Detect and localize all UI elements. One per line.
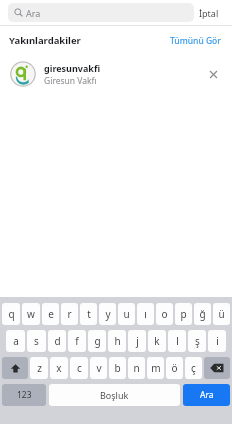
button[interactable]: c bbox=[70, 357, 88, 379]
staticText: v bbox=[96, 361, 102, 375]
button[interactable]: Ara bbox=[8, 3, 194, 22]
staticText: Yakınlardakiler bbox=[9, 34, 81, 47]
button[interactable]: Shift bbox=[2, 357, 28, 379]
staticText: k bbox=[154, 334, 160, 348]
button[interactable]: q bbox=[2, 303, 20, 325]
button[interactable]: j bbox=[128, 330, 146, 352]
button[interactable]: o bbox=[156, 303, 173, 325]
button[interactable]: u bbox=[118, 303, 135, 325]
button[interactable]: m bbox=[147, 357, 164, 379]
staticText: Boşluk bbox=[100, 389, 129, 401]
staticText: j bbox=[136, 334, 139, 348]
staticText: p bbox=[180, 307, 187, 321]
staticText: c bbox=[77, 361, 82, 375]
staticText: n bbox=[133, 361, 140, 375]
staticText: l bbox=[176, 334, 179, 348]
button[interactable]: Boşluk bbox=[49, 384, 180, 406]
button[interactable]: l bbox=[168, 330, 186, 352]
button[interactable]: ş bbox=[188, 330, 206, 352]
staticText: f bbox=[75, 334, 79, 348]
button[interactable]: ö bbox=[166, 357, 183, 379]
button[interactable]: h bbox=[108, 330, 126, 352]
button[interactable]: e bbox=[42, 303, 59, 325]
staticText: y bbox=[105, 307, 111, 321]
staticText: g bbox=[94, 334, 101, 348]
staticText: t bbox=[87, 307, 91, 321]
button[interactable]: a bbox=[6, 330, 25, 352]
staticText: İptal bbox=[199, 7, 219, 19]
button[interactable]: g bbox=[88, 330, 106, 352]
staticText: z bbox=[37, 361, 42, 375]
staticText: 123 bbox=[17, 389, 32, 401]
staticText: i bbox=[216, 334, 219, 348]
button[interactable]: Tümünü Gör bbox=[168, 33, 223, 49]
button[interactable]: Ara bbox=[183, 384, 230, 406]
staticText: ş bbox=[195, 334, 200, 348]
staticText: x bbox=[56, 361, 62, 375]
button[interactable]: k bbox=[148, 330, 166, 352]
button[interactable]: i bbox=[208, 330, 226, 352]
staticText: s bbox=[34, 334, 39, 348]
staticText: Tümünü Gör bbox=[170, 35, 221, 47]
button[interactable]: f bbox=[68, 330, 86, 352]
button[interactable]: 123 bbox=[2, 384, 46, 406]
staticText: Ara bbox=[26, 7, 41, 19]
staticText: o bbox=[161, 307, 168, 321]
button[interactable]: s bbox=[27, 330, 46, 352]
button[interactable]: t bbox=[80, 303, 97, 325]
staticText: ç bbox=[191, 361, 196, 375]
button[interactable]: z bbox=[30, 357, 48, 379]
button[interactable]: r bbox=[61, 303, 78, 325]
button[interactable]: ç bbox=[185, 357, 202, 379]
button[interactable]: n bbox=[128, 357, 145, 379]
button[interactable]: y bbox=[99, 303, 116, 325]
button[interactable]: d bbox=[48, 330, 66, 352]
button[interactable]: ü bbox=[213, 303, 230, 325]
button[interactable]: ğ bbox=[194, 303, 211, 325]
staticText: b bbox=[114, 361, 121, 375]
staticText: h bbox=[114, 334, 121, 348]
button[interactable]: x bbox=[50, 357, 68, 379]
staticText: ı bbox=[144, 307, 147, 321]
staticText: Ara bbox=[200, 389, 214, 401]
staticText: Giresun Vakfı bbox=[44, 75, 97, 87]
staticText: giresunvakfi bbox=[44, 62, 101, 74]
button[interactable]: ı bbox=[137, 303, 154, 325]
button[interactable]: İptal bbox=[194, 5, 224, 21]
button[interactable]: p bbox=[175, 303, 192, 325]
staticText: e bbox=[48, 307, 54, 321]
staticText: u bbox=[123, 307, 130, 321]
button[interactable]: w bbox=[22, 303, 40, 325]
button[interactable]: v bbox=[90, 357, 107, 379]
button[interactable]: b bbox=[109, 357, 126, 379]
button[interactable]: Sil bbox=[204, 357, 230, 379]
staticText: w bbox=[27, 307, 35, 321]
staticText: m bbox=[151, 361, 161, 375]
staticText: a bbox=[13, 334, 19, 348]
button[interactable]: Kaldır bbox=[204, 65, 222, 83]
staticText: d bbox=[54, 334, 61, 348]
button[interactable]: giresunvakfi bbox=[0, 55, 232, 93]
staticText: ü bbox=[218, 307, 225, 321]
staticText: ö bbox=[171, 361, 178, 375]
staticText: ğ bbox=[199, 307, 206, 321]
staticText: q bbox=[8, 307, 15, 321]
staticText: r bbox=[67, 307, 72, 321]
